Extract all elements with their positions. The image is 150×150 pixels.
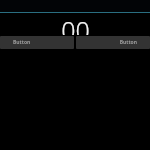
button[interactable]: Button [76,36,150,49]
staticText: Button [119,39,137,46]
button[interactable]: Button [0,36,74,49]
staticText: Button [13,39,31,46]
staticText: 00 [61,13,90,35]
